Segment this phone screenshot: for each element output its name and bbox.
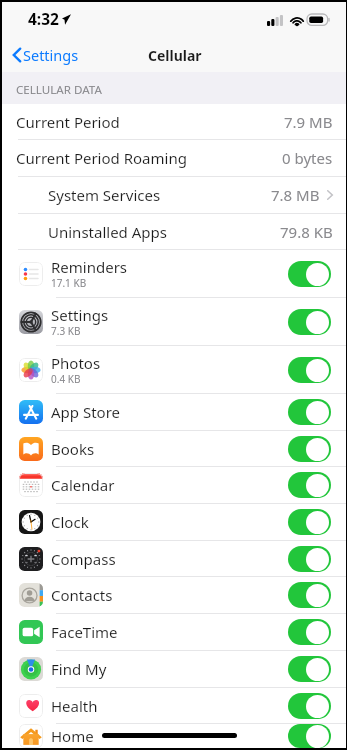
staticText: Compass [51, 549, 116, 569]
staticText: FaceTime [51, 622, 118, 642]
button[interactable]: Toggle [288, 436, 331, 462]
button[interactable]: Toggle [288, 309, 331, 335]
button[interactable]: FaceTime [2, 614, 346, 651]
staticText: Home [51, 726, 94, 746]
button[interactable]: Settings [2, 298, 346, 346]
button[interactable]: Current Period [2, 104, 346, 140]
staticText: Clock [51, 512, 89, 532]
staticText: Health [51, 696, 98, 716]
button[interactable]: Toggle [288, 582, 331, 608]
staticText: 0 bytes [282, 148, 333, 168]
staticText: Calendar [51, 475, 115, 495]
staticText: App Store [51, 402, 121, 422]
button[interactable]: Toggle [288, 357, 331, 383]
staticText: Current Period [16, 112, 120, 132]
button[interactable]: Toggle [288, 546, 331, 572]
staticText: Contacts [51, 585, 113, 605]
button[interactable]: Toggle [288, 509, 331, 535]
button[interactable]: Current Period Roaming [2, 140, 346, 177]
button[interactable]: Compass [2, 541, 346, 577]
button[interactable]: System Services [2, 177, 346, 214]
staticText: Settings [23, 45, 79, 65]
staticText: System Services [48, 185, 161, 205]
button[interactable]: Toggle [288, 472, 331, 498]
staticText: Current Period Roaming [16, 148, 187, 168]
staticText: 17.1 KB [51, 276, 87, 290]
button[interactable]: App Store [2, 394, 346, 431]
button[interactable]: Contacts [2, 577, 346, 614]
staticText: 4:32 [28, 8, 59, 29]
button[interactable]: Home [2, 724, 346, 748]
button[interactable]: Toggle [288, 261, 331, 287]
button[interactable]: Reminders [2, 250, 346, 298]
button[interactable]: Clock [2, 504, 346, 541]
staticText: 0.4 KB [51, 372, 81, 386]
button[interactable]: Toggle [288, 656, 331, 682]
staticText: Find My [51, 659, 107, 679]
button[interactable]: Books [2, 431, 346, 467]
button[interactable]: Photos [2, 346, 346, 394]
button[interactable]: Toggle [288, 399, 331, 425]
staticText: Cellular [148, 46, 202, 65]
button[interactable]: Find My [2, 651, 346, 688]
staticText: Uninstalled Apps [48, 222, 167, 242]
staticText: 79.8 KB [280, 222, 333, 242]
staticText: Photos [51, 353, 101, 373]
button[interactable]: Settings [2, 40, 87, 70]
button[interactable]: Toggle [288, 619, 331, 645]
button[interactable]: Health [2, 688, 346, 724]
button[interactable]: Toggle [288, 693, 331, 719]
staticText: 7.3 KB [51, 324, 81, 338]
button[interactable]: Calendar [2, 467, 346, 504]
staticText: 7.8 MB [271, 185, 320, 205]
staticText: Books [51, 439, 95, 459]
staticText: CELLULAR DATA [16, 82, 102, 98]
button[interactable]: Uninstalled Apps [2, 214, 346, 250]
button[interactable]: Toggle [288, 724, 331, 748]
staticText: 7.9 MB [284, 112, 333, 132]
staticText: Reminders [51, 257, 128, 277]
staticText: Settings [51, 305, 109, 325]
